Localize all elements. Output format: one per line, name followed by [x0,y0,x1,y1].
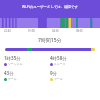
staticText: 9分 [50,70,58,76]
staticText: 4時58分 [50,55,67,61]
staticText: ニュース [54,62,66,66]
staticText: Wi-Fiのユーザーとしては、確認です [22,4,78,9]
button[interactable]: 1時35分 [4,55,50,66]
button[interactable]: 9分 [50,70,96,81]
staticText: ツール [54,77,63,81]
staticText: 1時35分 [4,55,21,61]
staticText: 22:40 [4,29,11,33]
button[interactable]: 4時58分 [50,55,96,66]
button[interactable]: 43分 [4,70,50,81]
staticText: 08:05 [76,29,83,33]
staticText: 43分 [4,70,14,76]
staticText: ソーシャル [8,62,23,66]
staticText: 04:36 [52,29,59,33]
staticText: 7時間15分 [38,37,62,44]
staticText: ゲーム [8,77,17,81]
staticText: 01:08 [28,29,35,33]
